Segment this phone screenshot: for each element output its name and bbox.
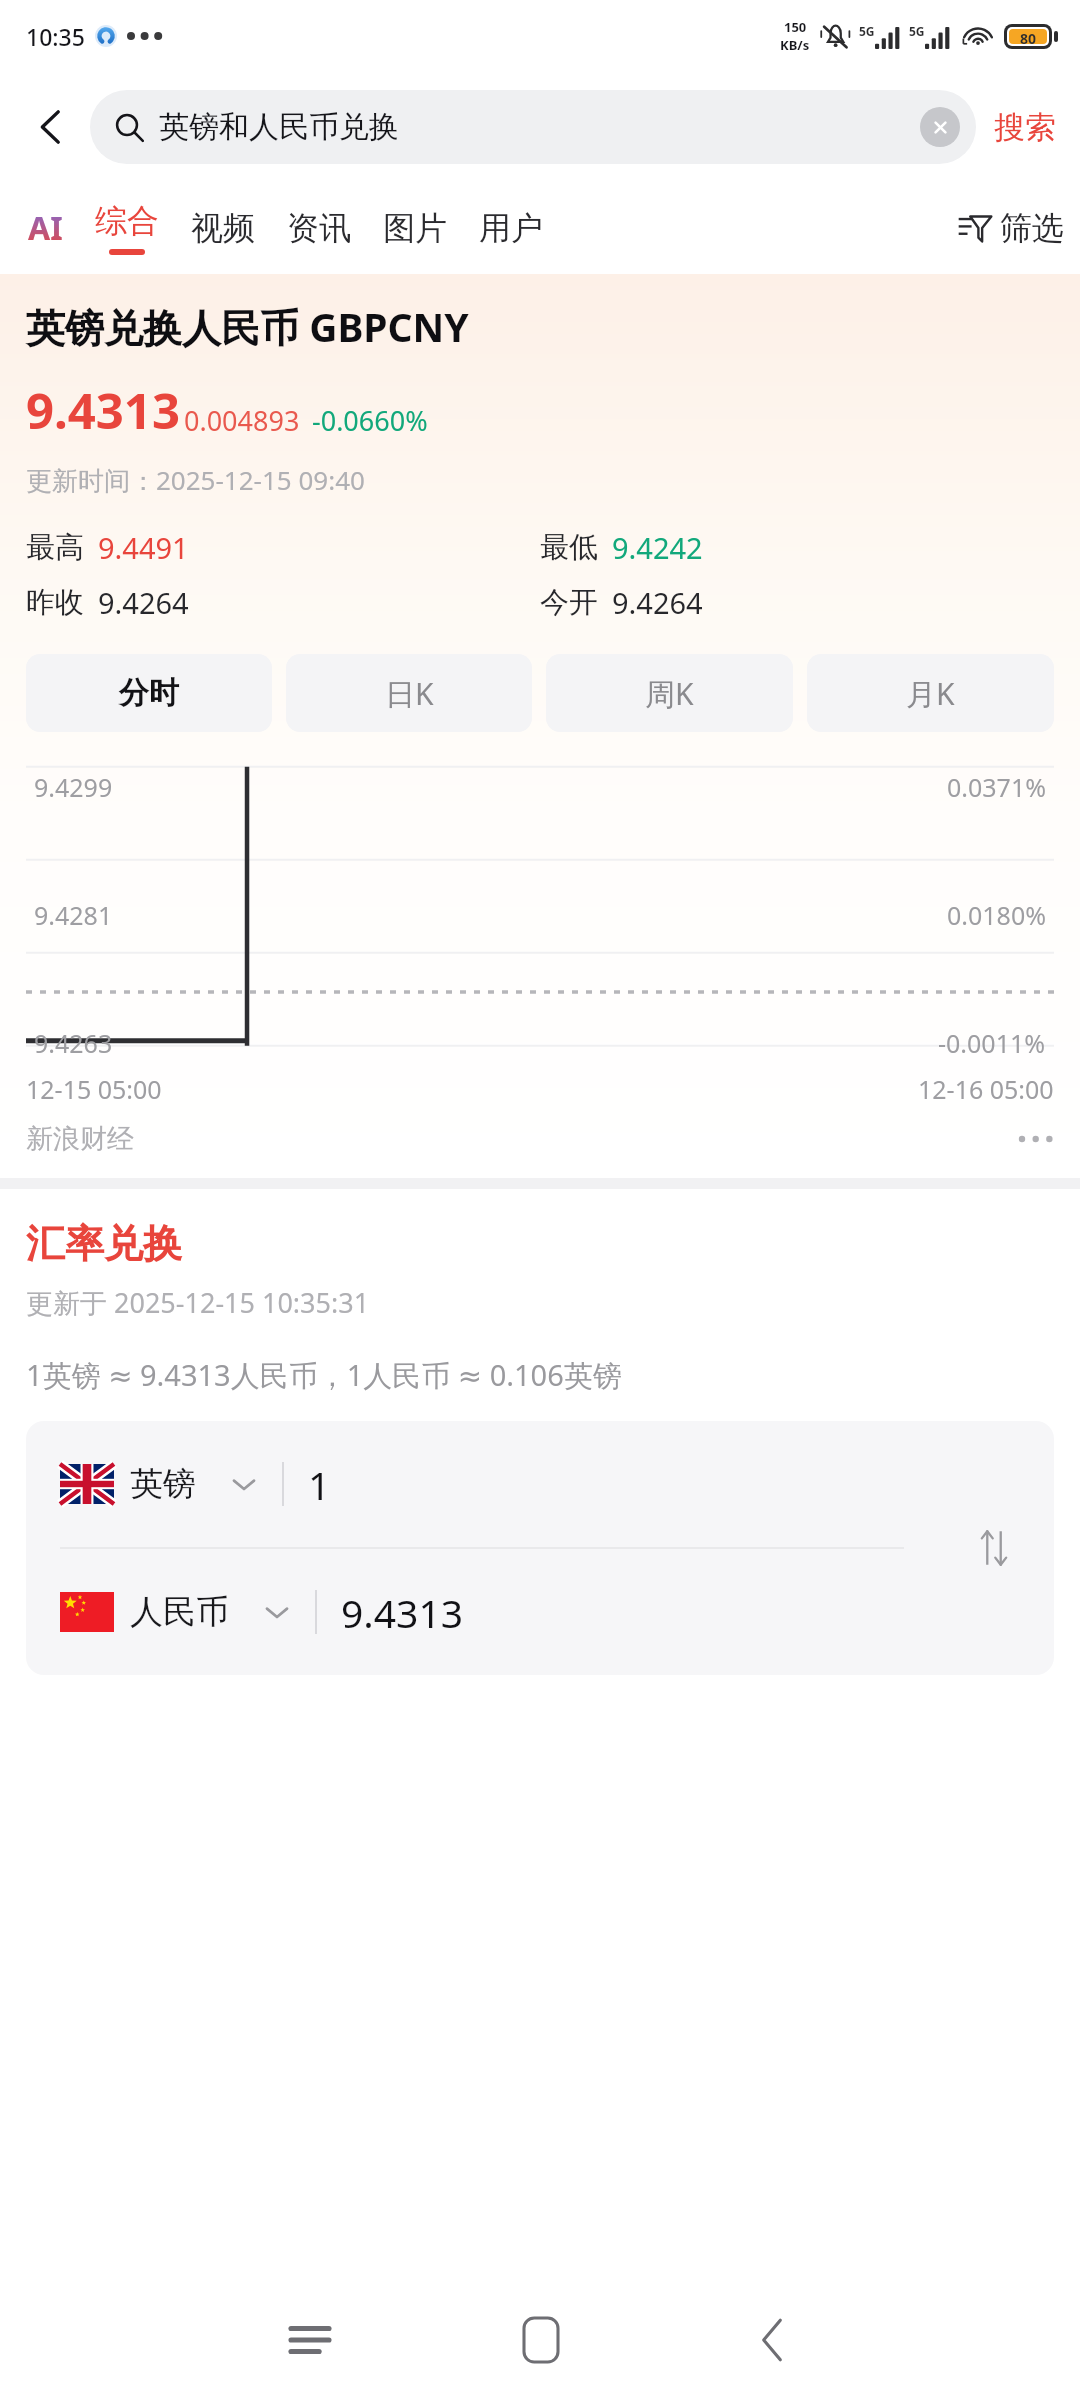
staticText: 最低 bbox=[540, 529, 598, 566]
button[interactable]: Clear bbox=[920, 107, 960, 147]
button[interactable]: Back bbox=[18, 94, 84, 160]
staticText: 新浪财经 bbox=[26, 1122, 134, 1156]
button[interactable]: Recents bbox=[194, 2280, 425, 2400]
staticText: 英镑 bbox=[130, 1463, 196, 1505]
staticText: 综合 bbox=[95, 201, 159, 241]
button[interactable]: 筛选 bbox=[958, 198, 1064, 258]
staticText: 9.4313 bbox=[26, 377, 180, 444]
button[interactable]: Back bbox=[656, 2280, 887, 2400]
staticText: 10:35 bbox=[26, 21, 85, 52]
staticText: 资讯 bbox=[287, 208, 351, 248]
staticText: 昨收 bbox=[26, 584, 84, 621]
staticText: 9.4491 bbox=[98, 528, 189, 567]
staticText: 图片 bbox=[383, 208, 447, 248]
staticText: 汇率兑换 bbox=[26, 1219, 182, 1268]
staticText: 9.4264 bbox=[98, 583, 189, 622]
button[interactable]: 月K bbox=[807, 654, 1054, 732]
staticText: 9.4263 bbox=[34, 1026, 113, 1060]
staticText: 9.4264 bbox=[612, 583, 703, 622]
button[interactable]: Home bbox=[425, 2280, 656, 2400]
staticText: 5G bbox=[909, 23, 925, 39]
staticText: 筛选 bbox=[1000, 208, 1064, 248]
staticText: 12-16 05:00 bbox=[918, 1072, 1054, 1106]
staticText: 月K bbox=[906, 673, 955, 714]
staticText: 0.004893 bbox=[184, 402, 300, 439]
staticText: 150 bbox=[784, 18, 807, 36]
button[interactable]: 用户 bbox=[473, 198, 549, 258]
staticText: 人民币 bbox=[130, 1591, 229, 1633]
staticText: 日K bbox=[385, 673, 434, 714]
button[interactable]: 视频 bbox=[185, 198, 261, 258]
staticText: 9.4313 bbox=[341, 1586, 463, 1639]
staticText: 9.4281 bbox=[34, 898, 113, 932]
button[interactable]: 英镑和人民币兑换 bbox=[90, 90, 976, 164]
staticText: 1英镑 ≈ 9.4313人民币，1人民币 ≈ 0.106英镑 bbox=[26, 1355, 622, 1395]
staticText: 用户 bbox=[479, 208, 543, 248]
staticText: 80 bbox=[1020, 29, 1037, 44]
button[interactable]: 英镑 bbox=[26, 1421, 1054, 1547]
button[interactable]: 资讯 bbox=[281, 198, 357, 258]
staticText: 12-15 05:00 bbox=[26, 1072, 162, 1106]
staticText: 更新时间：2025-12-15 09:40 bbox=[26, 462, 365, 498]
staticText: 0.0371% bbox=[947, 770, 1046, 804]
button[interactable]: 日K bbox=[286, 654, 532, 732]
button[interactable]: AI bbox=[22, 196, 69, 260]
staticText: KB/s bbox=[780, 36, 810, 54]
staticText: 搜索 bbox=[994, 108, 1056, 147]
button[interactable]: Swap currencies bbox=[966, 1520, 1022, 1576]
button[interactable]: 搜索 bbox=[988, 98, 1062, 157]
staticText: -0.0011% bbox=[938, 1026, 1046, 1060]
staticText: 1 bbox=[308, 1458, 331, 1511]
button[interactable]: 周K bbox=[546, 654, 793, 732]
staticText: 0.0180% bbox=[947, 898, 1046, 932]
button[interactable]: 人民币 bbox=[26, 1549, 1054, 1675]
staticText: 视频 bbox=[191, 208, 255, 248]
button[interactable]: 新浪财经 bbox=[26, 1106, 1054, 1178]
staticText: 9.4242 bbox=[612, 528, 703, 567]
staticText: 5G bbox=[859, 23, 875, 39]
staticText: AI bbox=[28, 206, 63, 250]
staticText: 最高 bbox=[26, 529, 84, 566]
staticText: 英镑兑换人民币 GBPCNY bbox=[26, 300, 469, 353]
staticText: 分时 bbox=[119, 674, 179, 712]
staticText: 周K bbox=[645, 673, 694, 714]
staticText: 9.4299 bbox=[34, 770, 113, 804]
staticText: 更新于 2025-12-15 10:35:31 bbox=[26, 1284, 370, 1321]
button[interactable]: 综合 bbox=[89, 201, 165, 255]
button[interactable]: 图片 bbox=[377, 198, 453, 258]
staticText: 英镑和人民币兑换 bbox=[159, 108, 399, 146]
staticText: 今开 bbox=[540, 584, 598, 621]
staticText: -0.0660% bbox=[312, 402, 428, 439]
button[interactable]: 分时 bbox=[26, 654, 272, 732]
